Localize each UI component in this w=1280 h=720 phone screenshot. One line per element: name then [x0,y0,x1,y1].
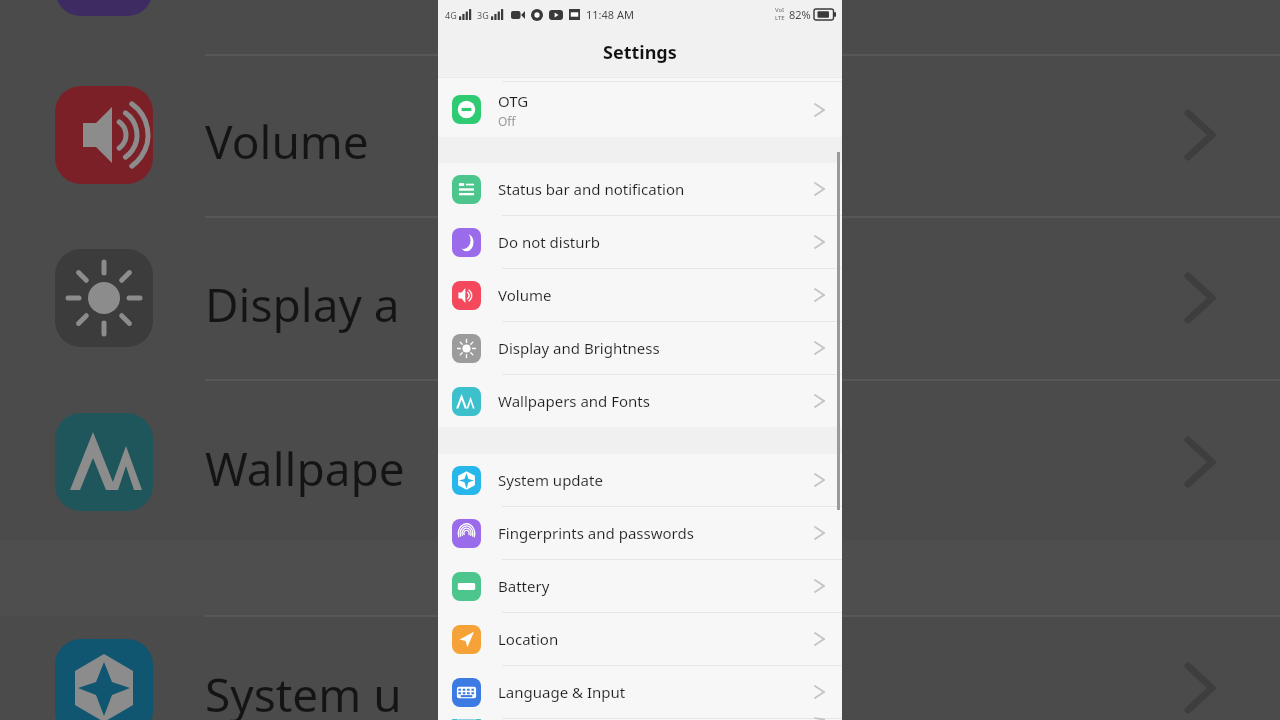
staticText: Wallpapers and Fonts [498,391,650,411]
button[interactable]: Volume [438,269,842,321]
staticText: Language & Input [498,682,626,702]
staticText: 82% [789,7,811,22]
staticText: Do not disturb [498,232,600,252]
staticText: Volume [205,110,369,173]
button[interactable]: Wallpapers and Fonts [438,375,842,427]
button[interactable]: OTG [438,82,842,137]
staticText: Status bar and notification [498,179,685,199]
staticText: Settings [603,40,677,65]
button[interactable]: Display and Brightness [438,322,842,374]
button[interactable]: Do not disturb [438,216,842,268]
staticText: OTG [498,91,529,111]
button[interactable]: Location [438,613,842,665]
staticText: Wallpape [205,437,405,500]
staticText: Fingerprints and passwords [498,523,694,543]
staticText: Location [498,629,559,649]
staticText: 11:48 AM [586,7,634,22]
staticText: LTE [775,14,785,22]
button[interactable]: Battery [438,560,842,612]
button[interactable]: Fingerprints and passwords [438,507,842,559]
staticText: System update [498,470,603,490]
staticText: 4G [445,9,457,21]
staticText: System u [205,663,402,720]
staticText: VoI [775,6,785,14]
button[interactable]: System update [438,454,842,506]
button[interactable]: Language & Input [438,666,842,718]
staticText: Off [498,113,516,129]
button[interactable]: Status bar and notification [438,163,842,215]
button[interactable]: Additional settings [438,719,842,720]
staticText: Volume [498,285,552,305]
staticText: 3G [477,9,489,21]
staticText: Battery [498,576,550,596]
staticText: Display a [205,273,400,336]
staticText: Display and Brightness [498,338,660,358]
